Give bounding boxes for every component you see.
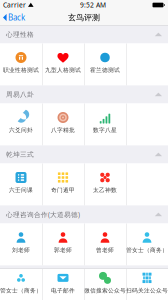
staticText: 八字精批 [51,126,75,134]
staticText: 9:52 AM [80,0,106,10]
button[interactable]: 扫码关注公众号 [126,269,168,300]
button[interactable]: 八字精批 [42,103,84,145]
button[interactable]: 微信搜索公众号 [84,269,126,300]
button[interactable]: 心理性格 [0,25,168,43]
staticText: 心理咨询合作(大道易德) [6,210,80,219]
staticText: 职业性格测试 [3,66,39,74]
staticText: 电子邮件 [51,287,75,294]
button[interactable]: 刘老师 [0,223,42,265]
staticText: 奇门遁甲 [51,186,75,194]
staticText: 郭老师 [54,246,72,254]
staticText: 扫码关注公众号 [126,287,168,294]
button[interactable]: 管女士（商务） [126,223,168,265]
button[interactable]: 曾老师 [84,223,126,265]
staticText: 刘老师 [12,246,30,254]
button[interactable]: 奇门遁甲 [42,163,84,205]
button[interactable]: 职业性格测试 [0,43,42,85]
button[interactable]: 霍兰德测试 [84,43,126,85]
button[interactable]: 心理咨询合作(大道易德) [0,205,168,223]
button[interactable]: 九型人格测试 [42,43,84,85]
staticText: 管女士（商务） [0,287,42,294]
button[interactable]: 管女士（商务） [0,269,42,300]
staticText: 曾老师 [96,246,114,254]
staticText: 乾坤三式 [6,150,34,159]
staticText: 太乙神数 [93,186,117,194]
staticText: 六爻问卦 [9,126,33,134]
staticText: Back [8,12,25,23]
staticText: 心理性格 [6,30,34,39]
button[interactable]: Back [0,10,28,25]
button[interactable]: 六爻问卦 [0,103,42,145]
button[interactable]: 周易八卦 [0,85,168,103]
button[interactable]: 乾坤三式 [0,145,168,163]
staticText: 玄鸟评测 [68,12,100,23]
button[interactable]: 六壬问课 [0,163,42,205]
staticText: 九型人格测试 [45,66,81,74]
staticText: 六壬问课 [9,186,33,194]
button[interactable]: 电子邮件 [42,269,84,300]
staticText: 数字八星 [93,126,117,134]
staticText: Carrier [3,0,26,10]
staticText: 管女士（商务） [126,246,168,254]
button[interactable]: 数字八星 [84,103,126,145]
staticText: 微信搜索公众号 [84,287,126,294]
staticText: 霍兰德测试 [90,66,120,74]
button[interactable]: 郭老师 [42,223,84,265]
button[interactable]: 太乙神数 [84,163,126,205]
staticText: 周易八卦 [6,90,34,99]
